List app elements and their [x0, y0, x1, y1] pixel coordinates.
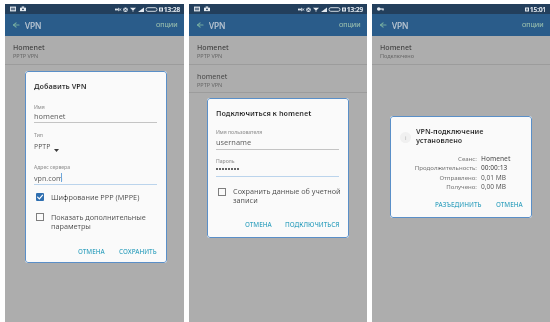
button[interactable]: ОПЦИИ	[151, 16, 183, 34]
staticText: Добавить VPN	[34, 81, 87, 91]
staticText: Продолжительность:	[396, 163, 477, 171]
staticText: Подключено	[380, 52, 414, 59]
staticText: VPN	[25, 20, 42, 31]
staticText: ОПЦИИ	[156, 21, 178, 29]
staticText: homenet	[34, 111, 66, 121]
staticText: Homenet	[481, 154, 511, 163]
staticText: Подключиться к homenet	[216, 108, 312, 118]
staticText: PPTP VPN	[197, 81, 223, 88]
staticText: Homenet	[380, 42, 412, 52]
staticText: 13:28	[164, 5, 181, 14]
button[interactable]: ОТМЕНА	[75, 244, 108, 259]
button[interactable]: Homenet	[372, 36, 550, 64]
button[interactable]: Back	[376, 14, 390, 36]
staticText: Адрес сервера	[34, 164, 71, 171]
staticText: 13:29	[347, 5, 364, 14]
button[interactable]: homenet	[189, 65, 367, 93]
staticText: Имя	[34, 104, 45, 111]
staticText: 0,00 MB	[481, 182, 507, 191]
staticText: ОТМЕНА	[496, 200, 523, 209]
staticText: РАЗЪЕДИНИТЬ	[435, 200, 482, 209]
staticText: 0,01 MB	[481, 173, 507, 182]
button[interactable]: РАЗЪЕДИНИТЬ	[432, 197, 485, 212]
button[interactable]: ОПЦИИ	[334, 16, 366, 34]
staticText: установлено	[416, 135, 463, 145]
staticText: ОТМЕНА	[245, 220, 272, 229]
staticText: Показать дополнительные параметры	[51, 212, 151, 231]
staticText: СОХРАНИТЬ	[119, 247, 157, 256]
button[interactable]: Homenet	[189, 36, 367, 64]
staticText: Шифрование PPP (MPPE)	[51, 192, 140, 202]
staticText: vpn.com	[34, 173, 63, 183]
staticText: username	[216, 137, 252, 147]
staticText: PPTP	[34, 142, 51, 151]
button[interactable]: Homenet	[5, 36, 184, 64]
staticText: homenet	[197, 71, 228, 81]
button[interactable]: Back	[193, 14, 207, 36]
staticText: Имя пользователя	[216, 129, 263, 136]
staticText: VPN	[209, 20, 226, 31]
staticText: PPTP VPN	[13, 52, 39, 59]
staticText: Пароль	[216, 158, 235, 165]
staticText: ОПЦИИ	[339, 21, 361, 29]
button[interactable]: ОТМЕНА	[493, 197, 526, 212]
button[interactable]: ОТМЕНА	[242, 217, 275, 232]
button[interactable]: ПОДКЛЮЧИТЬСЯ	[282, 217, 343, 232]
staticText: Homenet	[197, 42, 229, 52]
staticText: ОТМЕНА	[78, 247, 105, 256]
staticText: VPN-подключение	[416, 126, 484, 136]
staticText: PPTP VPN	[197, 52, 223, 59]
staticText: 00:00:13	[481, 163, 508, 172]
staticText: Сеанс:	[396, 154, 477, 162]
staticText: Отправлено:	[396, 173, 477, 181]
staticText: Тип	[34, 132, 43, 139]
staticText: ПОДКЛЮЧИТЬСЯ	[285, 220, 340, 229]
button[interactable]: ОПЦИИ	[517, 16, 549, 34]
staticText: 15:01	[530, 5, 547, 14]
staticText: i	[405, 134, 407, 142]
staticText: ОПЦИИ	[522, 21, 544, 29]
staticText: Получено:	[396, 182, 477, 190]
button[interactable]: СОХРАНИТЬ	[116, 244, 160, 259]
staticText: Homenet	[13, 42, 45, 52]
button[interactable]: Back	[9, 14, 23, 36]
staticText: VPN	[392, 20, 409, 31]
staticText: Сохранить данные об учетной записи	[233, 186, 343, 205]
